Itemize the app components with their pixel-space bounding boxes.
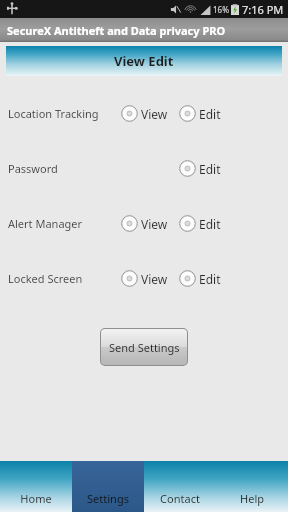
staticText: Edit [199, 161, 221, 177]
staticText: Edit [199, 271, 221, 287]
button[interactable]: Edit [179, 160, 221, 177]
staticText: Edit [199, 216, 221, 232]
staticText: 16% [213, 4, 229, 15]
staticText: View Edit [114, 52, 174, 70]
button[interactable]: View [121, 270, 168, 287]
button[interactable]: View Edit [6, 46, 282, 76]
staticText: SecureX Antitheft and Data privacy PRO [7, 23, 226, 38]
button[interactable]: Home [0, 461, 72, 512]
button[interactable]: Contact [144, 461, 216, 512]
staticText: Send Settings [109, 340, 180, 355]
staticText: View [141, 216, 168, 232]
button[interactable]: Settings [72, 461, 144, 512]
button[interactable]: View [121, 215, 168, 232]
staticText: View [141, 271, 168, 287]
button[interactable]: Send Settings [101, 329, 187, 365]
button[interactable]: Edit [179, 215, 221, 232]
staticText: Password [8, 161, 58, 176]
staticText: Edit [199, 106, 221, 122]
button[interactable]: Edit [179, 270, 221, 287]
staticText: Help [240, 491, 264, 506]
staticText: View [141, 106, 168, 122]
staticText: Home [20, 491, 52, 506]
staticText: Alert Manager [8, 216, 83, 231]
button[interactable]: Help [216, 461, 288, 512]
button[interactable]: Edit [179, 105, 221, 122]
staticText: Contact [160, 491, 200, 506]
staticText: 7:16 PM [242, 2, 284, 17]
button[interactable]: View [121, 105, 168, 122]
staticText: Location Tracking [8, 106, 99, 121]
staticText: Locked Screen [8, 271, 83, 286]
staticText: Settings [87, 491, 129, 506]
